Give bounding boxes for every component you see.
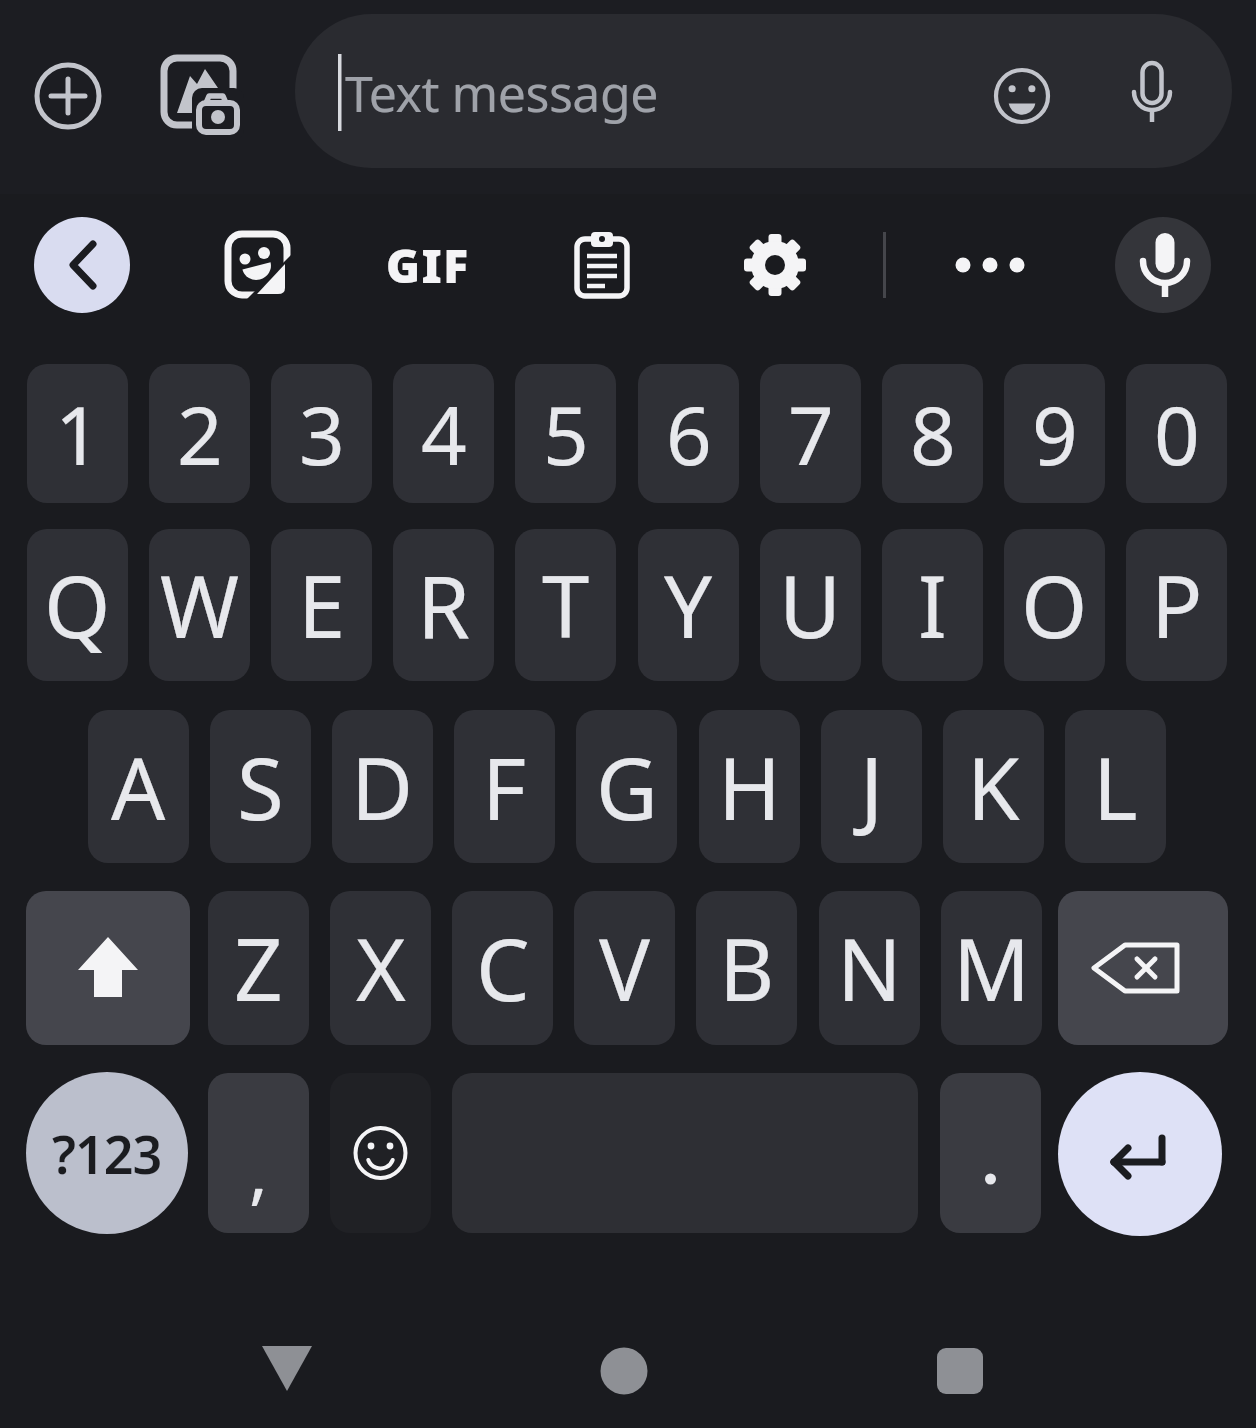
button[interactable]: Z bbox=[208, 891, 309, 1045]
staticText: 6 bbox=[666, 379, 712, 488]
staticText: V bbox=[599, 910, 651, 1026]
staticText: F bbox=[482, 729, 527, 845]
button[interactable]: N bbox=[819, 891, 920, 1045]
button[interactable]: Y bbox=[638, 529, 739, 681]
button[interactable] bbox=[920, 1332, 1000, 1412]
button[interactable]: K bbox=[943, 710, 1044, 863]
staticText: ?123 bbox=[52, 1118, 162, 1189]
button[interactable]: 8 bbox=[882, 364, 983, 503]
staticText: U bbox=[779, 547, 842, 663]
staticText: B bbox=[719, 910, 775, 1026]
staticText: 1 bbox=[55, 379, 101, 488]
button[interactable]: 6 bbox=[638, 364, 739, 503]
button[interactable]: F bbox=[454, 710, 555, 863]
staticText: Y bbox=[664, 547, 713, 663]
button[interactable]: 5 bbox=[515, 364, 616, 503]
button[interactable]: U bbox=[760, 529, 861, 681]
button[interactable]: Text message bbox=[295, 14, 1232, 168]
button[interactable]: G bbox=[576, 710, 677, 863]
button[interactable]: P bbox=[1126, 529, 1227, 681]
button[interactable]: 0 bbox=[1126, 364, 1227, 503]
staticText: P bbox=[1151, 547, 1203, 663]
button[interactable]: B bbox=[696, 891, 797, 1045]
button[interactable]: O bbox=[1004, 529, 1105, 681]
staticText: E bbox=[298, 547, 346, 663]
button[interactable]: R bbox=[393, 529, 494, 681]
button[interactable] bbox=[205, 217, 301, 313]
button[interactable] bbox=[727, 217, 823, 313]
button[interactable]: J bbox=[821, 710, 922, 863]
button[interactable] bbox=[942, 217, 1038, 313]
staticText: J bbox=[860, 729, 884, 845]
button[interactable] bbox=[34, 217, 130, 313]
staticText: C bbox=[476, 910, 530, 1026]
staticText: GIF bbox=[386, 234, 470, 297]
staticText: H bbox=[718, 729, 781, 845]
staticText: Q bbox=[44, 547, 111, 663]
button[interactable]: Q bbox=[27, 529, 128, 681]
staticText: 9 bbox=[1032, 379, 1078, 488]
staticText: Text message bbox=[345, 59, 658, 127]
staticText: 2 bbox=[177, 379, 223, 488]
staticText: G bbox=[596, 729, 658, 845]
button[interactable]: 3 bbox=[271, 364, 372, 503]
button[interactable] bbox=[26, 891, 190, 1045]
button[interactable] bbox=[554, 217, 650, 313]
button[interactable]: 1 bbox=[27, 364, 128, 503]
staticText: S bbox=[237, 729, 284, 845]
staticText: 3 bbox=[299, 379, 345, 488]
button[interactable]: E bbox=[271, 529, 372, 681]
staticText: D bbox=[351, 729, 414, 845]
staticText: L bbox=[1093, 729, 1138, 845]
button[interactable]: 4 bbox=[393, 364, 494, 503]
button[interactable]: T bbox=[515, 529, 616, 681]
button[interactable]: H bbox=[699, 710, 800, 863]
staticText: R bbox=[417, 547, 470, 663]
staticText: W bbox=[160, 547, 240, 663]
button[interactable]: X bbox=[330, 891, 431, 1045]
staticText: N bbox=[837, 910, 902, 1026]
staticText: , bbox=[249, 1122, 268, 1217]
staticText: T bbox=[542, 547, 590, 663]
button[interactable]: 9 bbox=[1004, 364, 1105, 503]
staticText: X bbox=[356, 910, 406, 1026]
button[interactable] bbox=[247, 1332, 327, 1412]
staticText: 8 bbox=[910, 379, 956, 488]
staticText: O bbox=[1021, 547, 1088, 663]
staticText: A bbox=[111, 729, 166, 845]
button[interactable]: L bbox=[1065, 710, 1166, 863]
button[interactable] bbox=[1058, 1072, 1222, 1236]
button[interactable]: M bbox=[941, 891, 1042, 1045]
button[interactable] bbox=[940, 1073, 1041, 1233]
staticText: I bbox=[918, 547, 947, 663]
button[interactable] bbox=[330, 1073, 431, 1233]
button[interactable]: V bbox=[574, 891, 675, 1045]
staticText: K bbox=[967, 729, 1020, 845]
button[interactable] bbox=[1058, 891, 1228, 1045]
button[interactable]: C bbox=[452, 891, 553, 1045]
button[interactable]: S bbox=[210, 710, 311, 863]
button[interactable]: W bbox=[149, 529, 250, 681]
button[interactable]: 7 bbox=[760, 364, 861, 503]
button[interactable] bbox=[1115, 217, 1211, 313]
staticText: 4 bbox=[421, 379, 467, 488]
staticText: 5 bbox=[543, 379, 589, 488]
button[interactable]: I bbox=[882, 529, 983, 681]
staticText: 0 bbox=[1154, 379, 1200, 488]
button[interactable]: , bbox=[208, 1073, 309, 1233]
button[interactable]: GIF bbox=[380, 217, 476, 313]
staticText: 7 bbox=[788, 379, 834, 488]
button[interactable]: ?123 bbox=[26, 1072, 188, 1234]
staticText: M bbox=[953, 910, 1031, 1026]
button[interactable]: A bbox=[88, 710, 189, 863]
staticText: Z bbox=[234, 910, 283, 1026]
button[interactable] bbox=[584, 1332, 664, 1412]
button[interactable]: D bbox=[332, 710, 433, 863]
button[interactable]: 2 bbox=[149, 364, 250, 503]
